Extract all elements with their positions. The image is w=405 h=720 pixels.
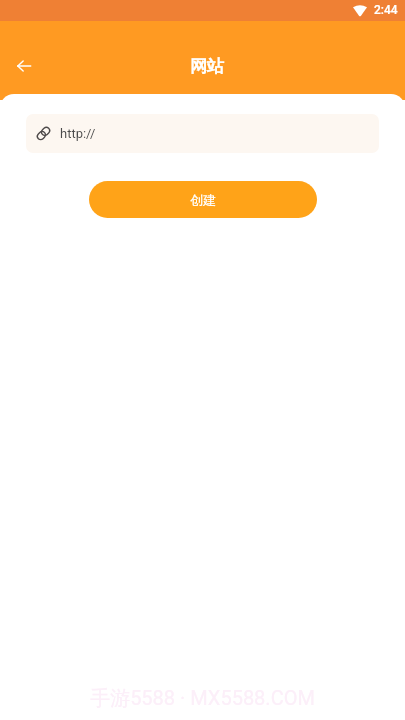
staticText: 创建 xyxy=(190,192,216,208)
staticText: http:// xyxy=(60,126,96,141)
button[interactable]: 创建 xyxy=(89,181,317,218)
staticText: 网站 xyxy=(190,56,224,77)
button[interactable]: http:// xyxy=(26,114,379,153)
staticText: 2:44 xyxy=(374,3,398,17)
button[interactable]: Back xyxy=(9,51,39,81)
staticText: 手游5588 · MX5588.COM xyxy=(90,686,315,711)
